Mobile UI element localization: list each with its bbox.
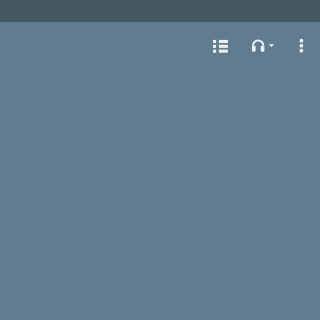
- button[interactable]: More options: [282, 22, 319, 56]
- button[interactable]: Select audio output device: [245, 22, 280, 56]
- button[interactable]: View as list: [207, 22, 245, 56]
